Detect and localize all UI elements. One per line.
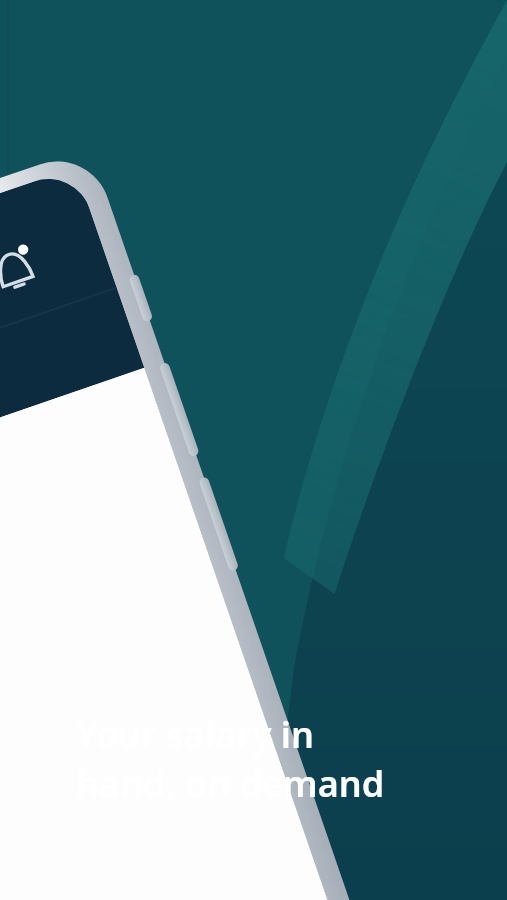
button[interactable]: Your salary in: [76, 710, 385, 808]
staticText: Your salary in: [76, 710, 314, 759]
staticText: hand, on demand: [76, 759, 385, 808]
